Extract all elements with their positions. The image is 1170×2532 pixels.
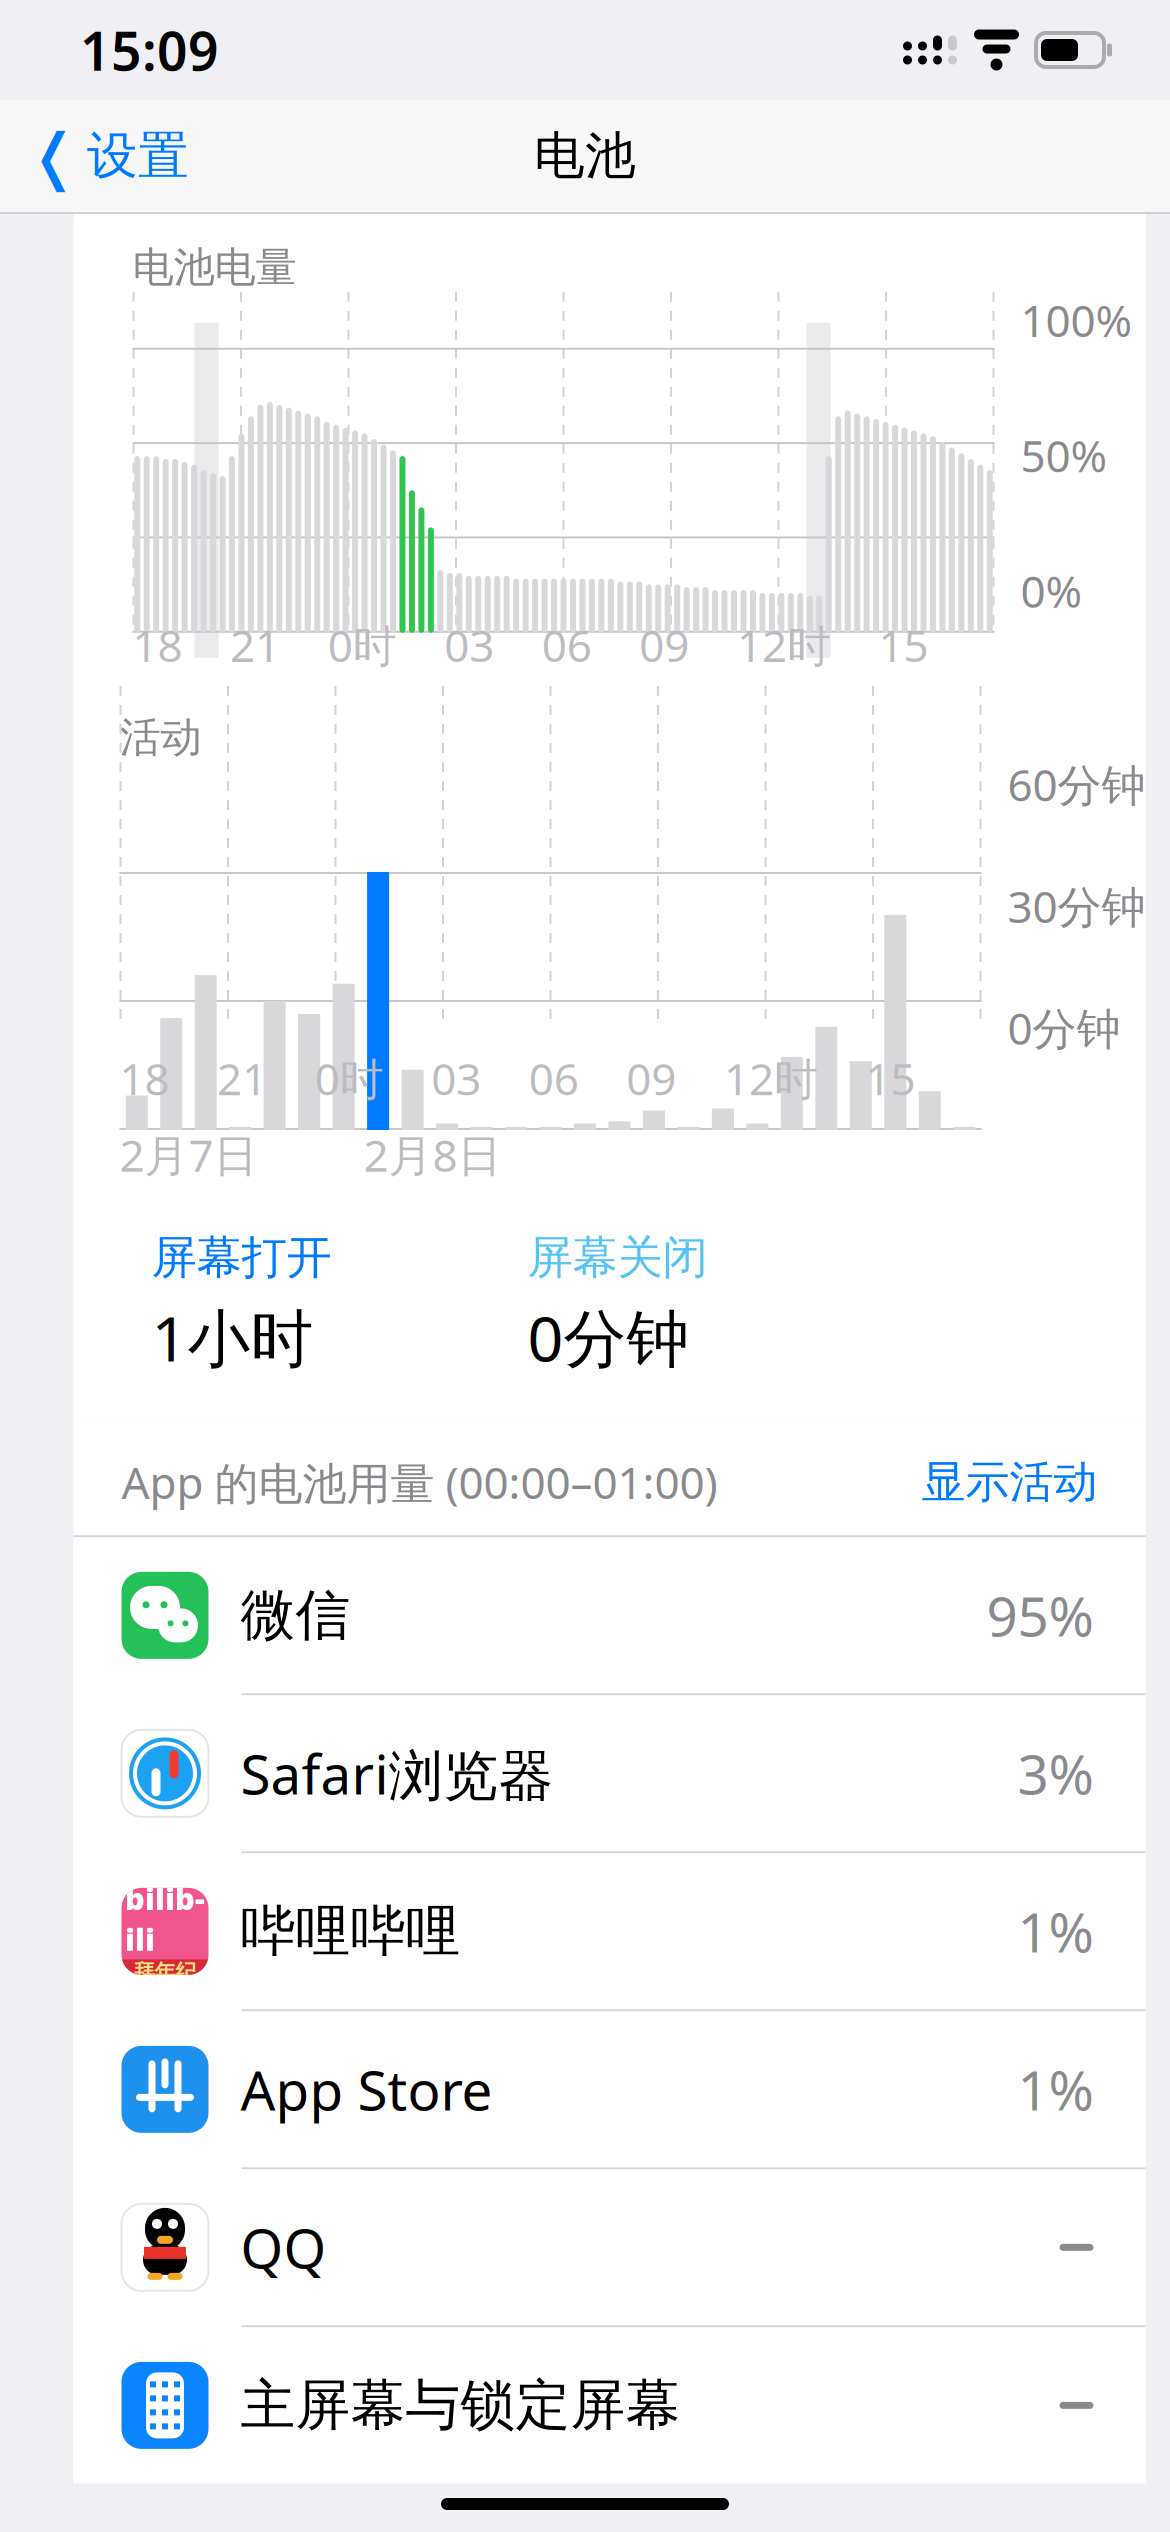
staticText: 电池电量 (132, 242, 296, 293)
staticText: 06 (542, 616, 592, 674)
staticText: App 的电池用量 (00:00–01:00) (121, 1453, 717, 1511)
staticText: 60分钟 (1007, 755, 1145, 813)
staticText: 03 (431, 1049, 481, 1107)
staticText: 18 (132, 616, 182, 674)
staticText: Safari浏览器 (240, 1737, 553, 1810)
button[interactable]: 显示活动 (921, 1455, 1097, 1509)
staticText: bilibili (125, 1878, 205, 1959)
staticText: 95% (986, 1579, 1093, 1652)
staticText: 03 (444, 616, 494, 674)
staticText: 屏幕打开 (151, 1230, 331, 1285)
staticText: 09 (626, 1049, 676, 1107)
staticText: 0% (1020, 561, 1082, 620)
staticText: QQ (240, 2211, 326, 2284)
staticText: 12时 (737, 616, 831, 674)
staticText: 21 (230, 616, 280, 674)
staticText: 50% (1020, 426, 1107, 484)
staticText: 活动 (119, 712, 201, 763)
button[interactable]: bilibili (73, 1853, 1145, 2011)
button[interactable]: 微信 (73, 1537, 1145, 1695)
staticText: 哔哩哔哩 (240, 1898, 460, 1965)
staticText: 2月7日 (119, 1125, 257, 1184)
staticText: 15:09 (80, 15, 219, 85)
staticText: 15 (878, 616, 928, 674)
staticText: 主屏幕与锁定屏幕 (240, 2372, 680, 2439)
staticText: 1% (1017, 2053, 1093, 2126)
staticText: 拜年纪 (133, 1959, 196, 1985)
button[interactable]: App Store (73, 2011, 1145, 2169)
staticText: 0分钟 (1007, 998, 1120, 1057)
staticText: 3% (1017, 1737, 1093, 1810)
staticText: 0分钟 (527, 1295, 689, 1379)
staticText: 30分钟 (1007, 877, 1145, 935)
staticText: 显示活动 (921, 1455, 1097, 1509)
staticText: 1% (1017, 1895, 1093, 1968)
staticText: 0时 (328, 616, 397, 674)
button[interactable]: Safari浏览器 (73, 1695, 1145, 1853)
staticText: 09 (639, 616, 689, 674)
staticText: 100% (1020, 291, 1132, 349)
staticText: 0时 (315, 1049, 384, 1107)
staticText: 12时 (724, 1049, 818, 1107)
button[interactable]: ❬ (0, 107, 189, 205)
staticText: 2月8日 (363, 1125, 501, 1184)
staticText: 设置 (87, 125, 189, 187)
staticText: 18 (119, 1049, 169, 1107)
staticText: ❬ (28, 121, 79, 191)
staticText: 电池 (534, 125, 636, 187)
staticText: 屏幕关闭 (527, 1230, 707, 1285)
staticText: 21 (217, 1049, 267, 1107)
staticText: 1小时 (151, 1295, 313, 1379)
staticText: 15 (865, 1049, 915, 1107)
button[interactable]: QQ (73, 2169, 1145, 2327)
staticText: 06 (529, 1049, 579, 1107)
staticText: 微信 (240, 1582, 350, 1649)
staticText: App Store (240, 2053, 492, 2126)
button[interactable]: 主屏幕与锁定屏幕 (73, 2327, 1145, 2483)
